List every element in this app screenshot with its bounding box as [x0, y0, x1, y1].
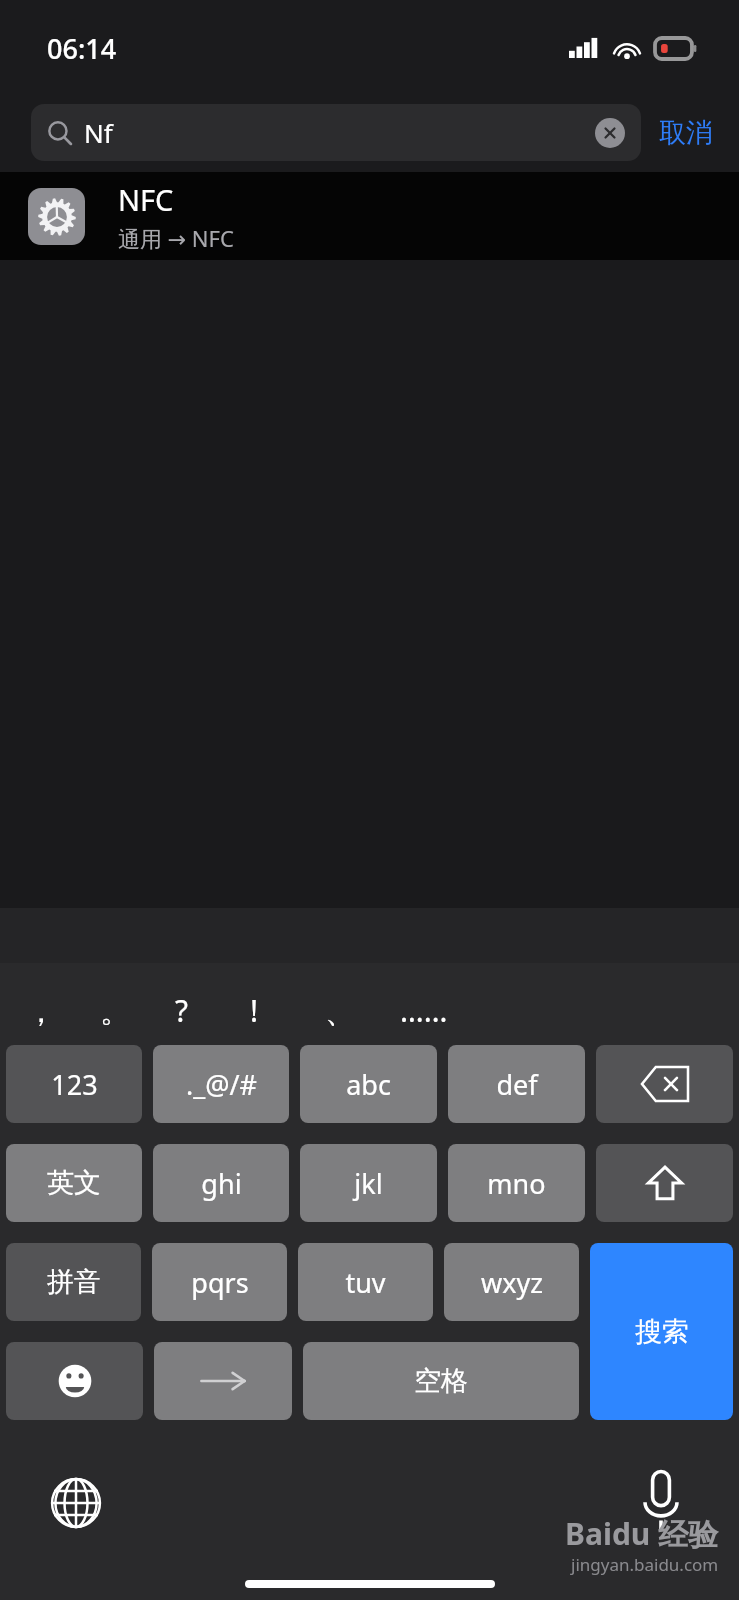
- button[interactable]: 拼音: [6, 1243, 141, 1321]
- button[interactable]: 搜索: [590, 1243, 733, 1420]
- staticText: jkl: [354, 1165, 383, 1202]
- button[interactable]: Clear text: [595, 118, 625, 148]
- button[interactable]: 空格: [303, 1342, 579, 1420]
- button[interactable]: Switch keyboard language: [50, 1477, 102, 1529]
- staticText: Nf: [84, 115, 113, 150]
- staticText: Baidu 经验: [565, 1513, 719, 1554]
- button[interactable]: Emoji: [6, 1342, 143, 1420]
- button[interactable]: 、: [325, 993, 355, 1031]
- button[interactable]: abc: [300, 1045, 437, 1123]
- staticText: tuv: [345, 1264, 386, 1301]
- button[interactable]: wxyz: [444, 1243, 579, 1321]
- button[interactable]: Delete: [596, 1045, 733, 1123]
- staticText: NFC: [118, 180, 174, 219]
- button[interactable]: Nf: [31, 104, 641, 161]
- button[interactable]: ，: [26, 993, 56, 1031]
- staticText: jingyan.baidu.com: [571, 1553, 719, 1576]
- button[interactable]: Shift: [596, 1144, 733, 1222]
- staticText: mno: [487, 1165, 546, 1202]
- button[interactable]: 英文: [6, 1144, 142, 1222]
- staticText: 取消: [659, 116, 713, 150]
- staticText: abc: [346, 1066, 391, 1103]
- button[interactable]: tuv: [298, 1243, 433, 1321]
- staticText: 英文: [47, 1166, 101, 1200]
- button[interactable]: mno: [448, 1144, 585, 1222]
- button[interactable]: 取消: [641, 104, 731, 161]
- staticText: 123: [51, 1066, 98, 1103]
- button[interactable]: ?: [175, 990, 189, 1031]
- button[interactable]: pqrs: [152, 1243, 287, 1321]
- button[interactable]: Voice input: [641, 1469, 681, 1531]
- staticText: 通用 → NFC: [118, 223, 234, 253]
- button[interactable]: 123: [6, 1045, 142, 1123]
- staticText: 搜索: [635, 1315, 689, 1349]
- button[interactable]: 。: [100, 993, 130, 1031]
- staticText: wxyz: [481, 1264, 543, 1301]
- staticText: 拼音: [47, 1265, 101, 1299]
- button[interactable]: NFC: [0, 172, 739, 260]
- other: Pointer arrow: [0, 172, 739, 260]
- button[interactable]: Next: [154, 1342, 292, 1420]
- button[interactable]: jkl: [300, 1144, 437, 1222]
- staticText: pqrs: [191, 1264, 249, 1301]
- button[interactable]: !: [250, 990, 259, 1031]
- button[interactable]: ._@/#: [153, 1045, 289, 1123]
- staticText: 06:14: [47, 30, 117, 67]
- staticText: 空格: [414, 1364, 468, 1398]
- staticText: def: [496, 1066, 538, 1103]
- staticText: ._@/#: [186, 1066, 257, 1103]
- staticText: ghi: [201, 1165, 242, 1202]
- button[interactable]: ghi: [153, 1144, 289, 1222]
- button[interactable]: def: [448, 1045, 585, 1123]
- button[interactable]: ……: [400, 990, 448, 1031]
